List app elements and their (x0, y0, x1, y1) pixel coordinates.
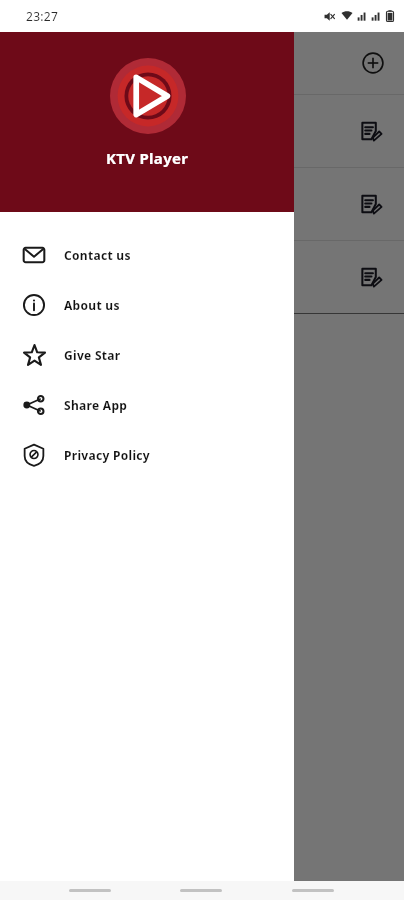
button[interactable]: Navigation (69, 889, 111, 892)
button[interactable]: Add (0, 32, 404, 94)
button[interactable]: Edit note (0, 95, 404, 167)
staticText: Contact us (64, 247, 131, 263)
button[interactable]: Share App (0, 380, 294, 430)
staticText: KTV Player (106, 148, 189, 168)
button[interactable]: Contact us (0, 230, 294, 280)
button[interactable]: Navigation (292, 889, 334, 892)
button[interactable]: Edit note (354, 114, 388, 148)
staticText: Share App (64, 397, 128, 413)
button[interactable]: Edit note (354, 187, 388, 221)
button[interactable]: Edit note (354, 260, 388, 294)
staticText: About us (64, 297, 120, 313)
button[interactable]: Give Star (0, 330, 294, 380)
staticText: Give Star (64, 347, 121, 363)
button[interactable]: About us (0, 280, 294, 330)
button[interactable]: Add (358, 48, 388, 78)
staticText: 23:27 (26, 8, 59, 24)
button[interactable]: Edit note (0, 168, 404, 240)
button[interactable]: Navigation (180, 889, 222, 892)
staticText: Privacy Policy (64, 447, 150, 463)
button[interactable]: Privacy Policy (0, 430, 294, 480)
button[interactable]: Edit note (0, 241, 404, 313)
